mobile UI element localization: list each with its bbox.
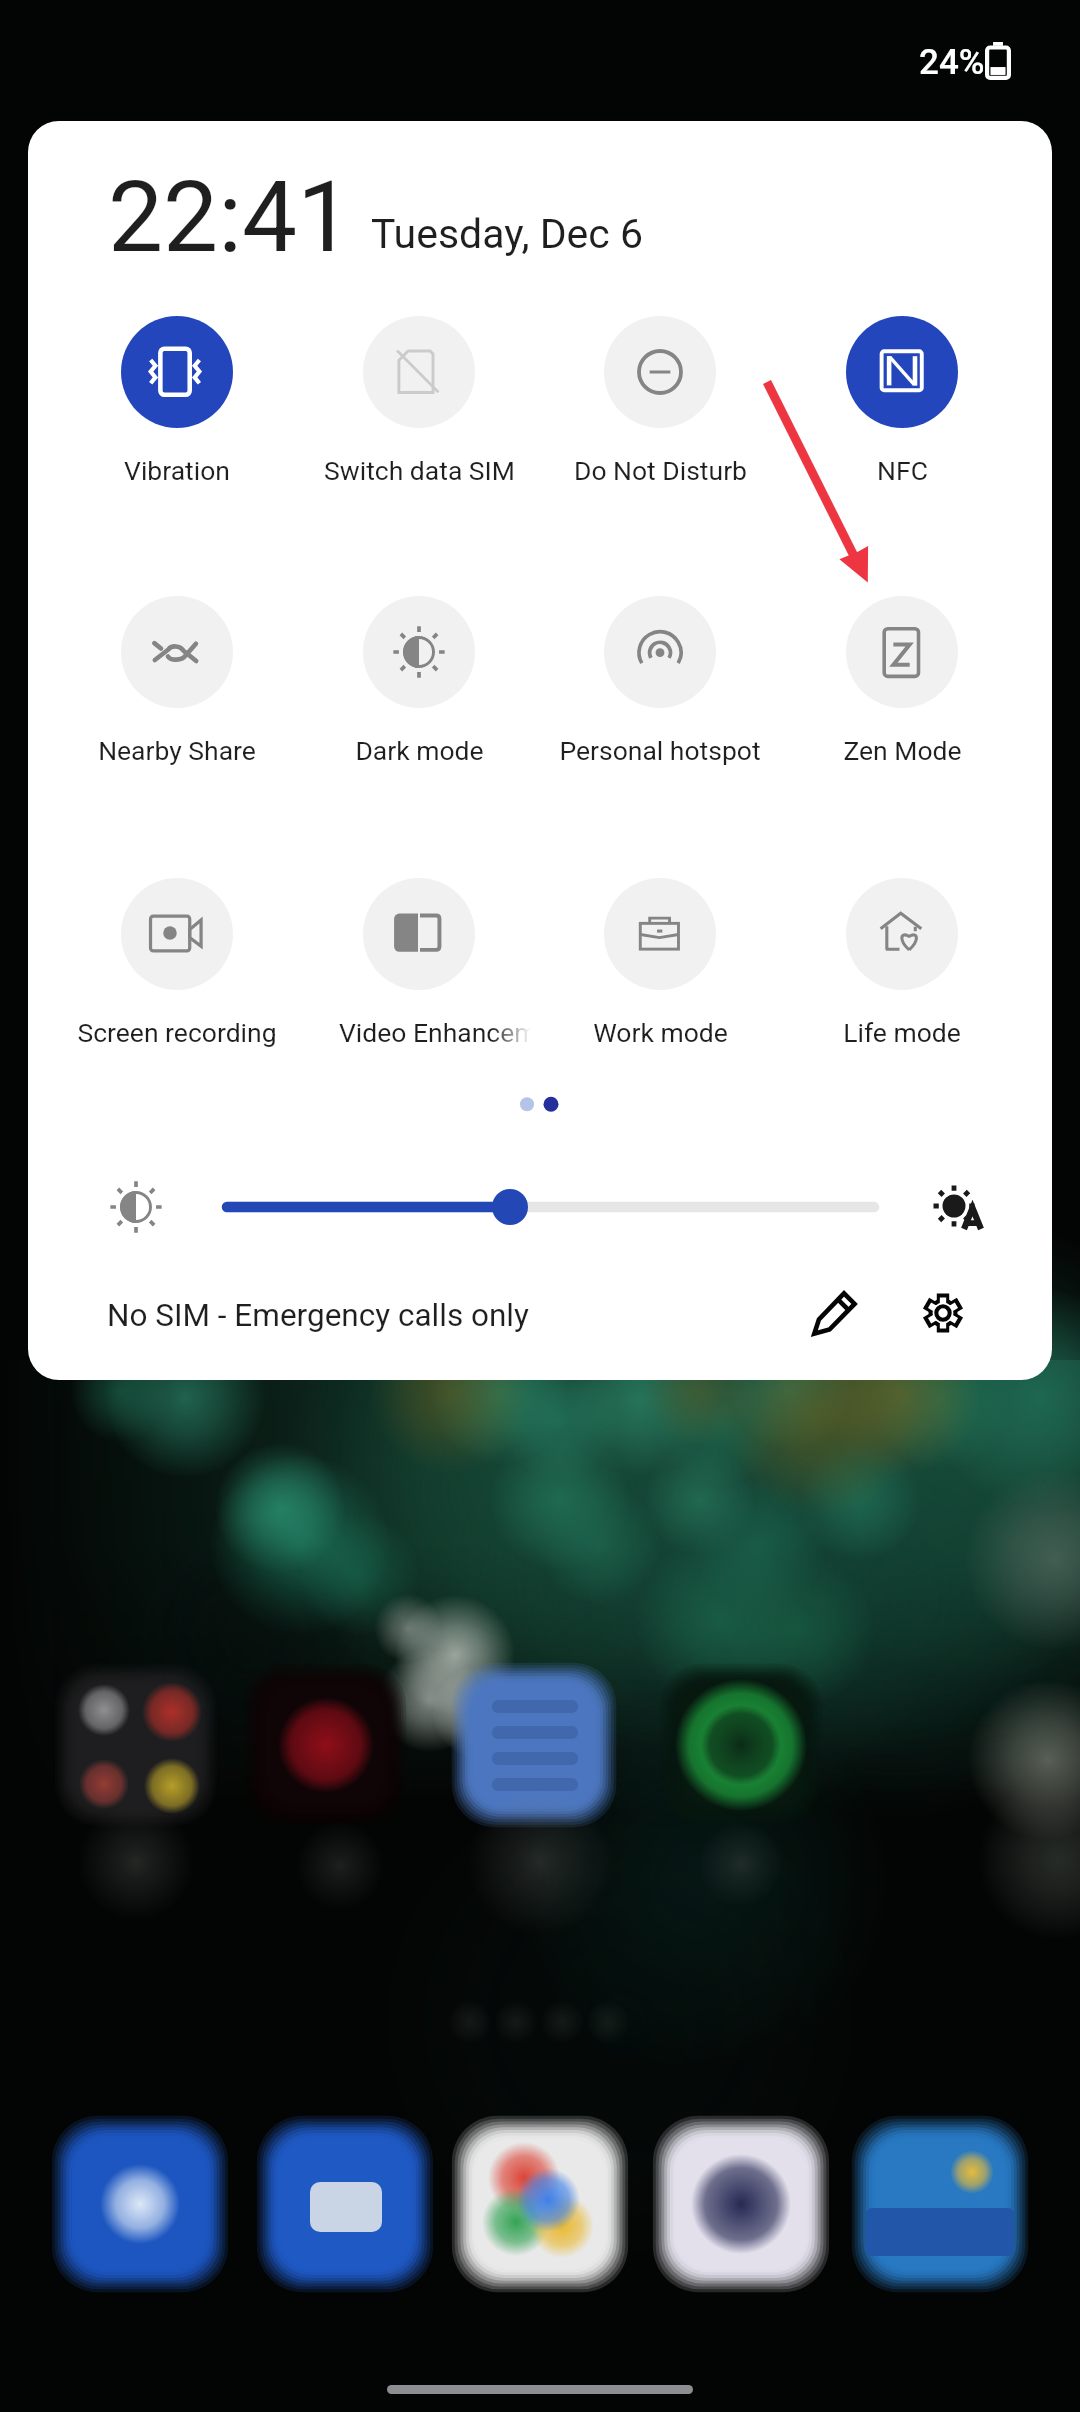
- staticText: Zen Mode: [843, 735, 962, 766]
- staticText: Life mode: [843, 1017, 961, 1048]
- button[interactable]: Personal hotspot: [604, 596, 716, 708]
- button[interactable]: Vibration: [121, 316, 233, 428]
- button[interactable]: Do Not Disturb: [604, 316, 716, 428]
- button[interactable]: Switch data SIM: [363, 316, 475, 428]
- staticText: Personal hotspot: [559, 735, 761, 766]
- staticText: Tuesday, Dec 6: [371, 210, 644, 258]
- staticText: Video Enhancement: [339, 1017, 531, 1048]
- button[interactable]: Dark mode: [363, 596, 475, 708]
- button[interactable]: Video Enhancement: [363, 878, 475, 990]
- staticText: 24%: [919, 42, 985, 83]
- button[interactable]: Nearby Share: [121, 596, 233, 708]
- button[interactable]: Life mode: [846, 878, 958, 990]
- button[interactable]: Settings: [895, 1265, 991, 1361]
- staticText: Switch data SIM: [324, 455, 515, 486]
- staticText: Nearby Share: [98, 735, 256, 766]
- button[interactable]: Edit tiles: [787, 1265, 883, 1361]
- staticText: NFC: [877, 455, 928, 486]
- staticText: Work mode: [593, 1017, 728, 1048]
- button[interactable]: Work mode: [604, 878, 716, 990]
- staticText: No SIM - Emergency calls only: [107, 1297, 529, 1334]
- button[interactable]: Zen Mode: [846, 596, 958, 708]
- staticText: Screen recording: [77, 1017, 277, 1048]
- staticText: Do Not Disturb: [574, 455, 747, 486]
- staticText: Vibration: [124, 455, 230, 486]
- staticText: 22:41: [108, 160, 353, 275]
- staticText: Dark mode: [355, 735, 484, 766]
- button[interactable]: Screen recording: [121, 878, 233, 990]
- button[interactable]: NFC: [846, 316, 958, 428]
